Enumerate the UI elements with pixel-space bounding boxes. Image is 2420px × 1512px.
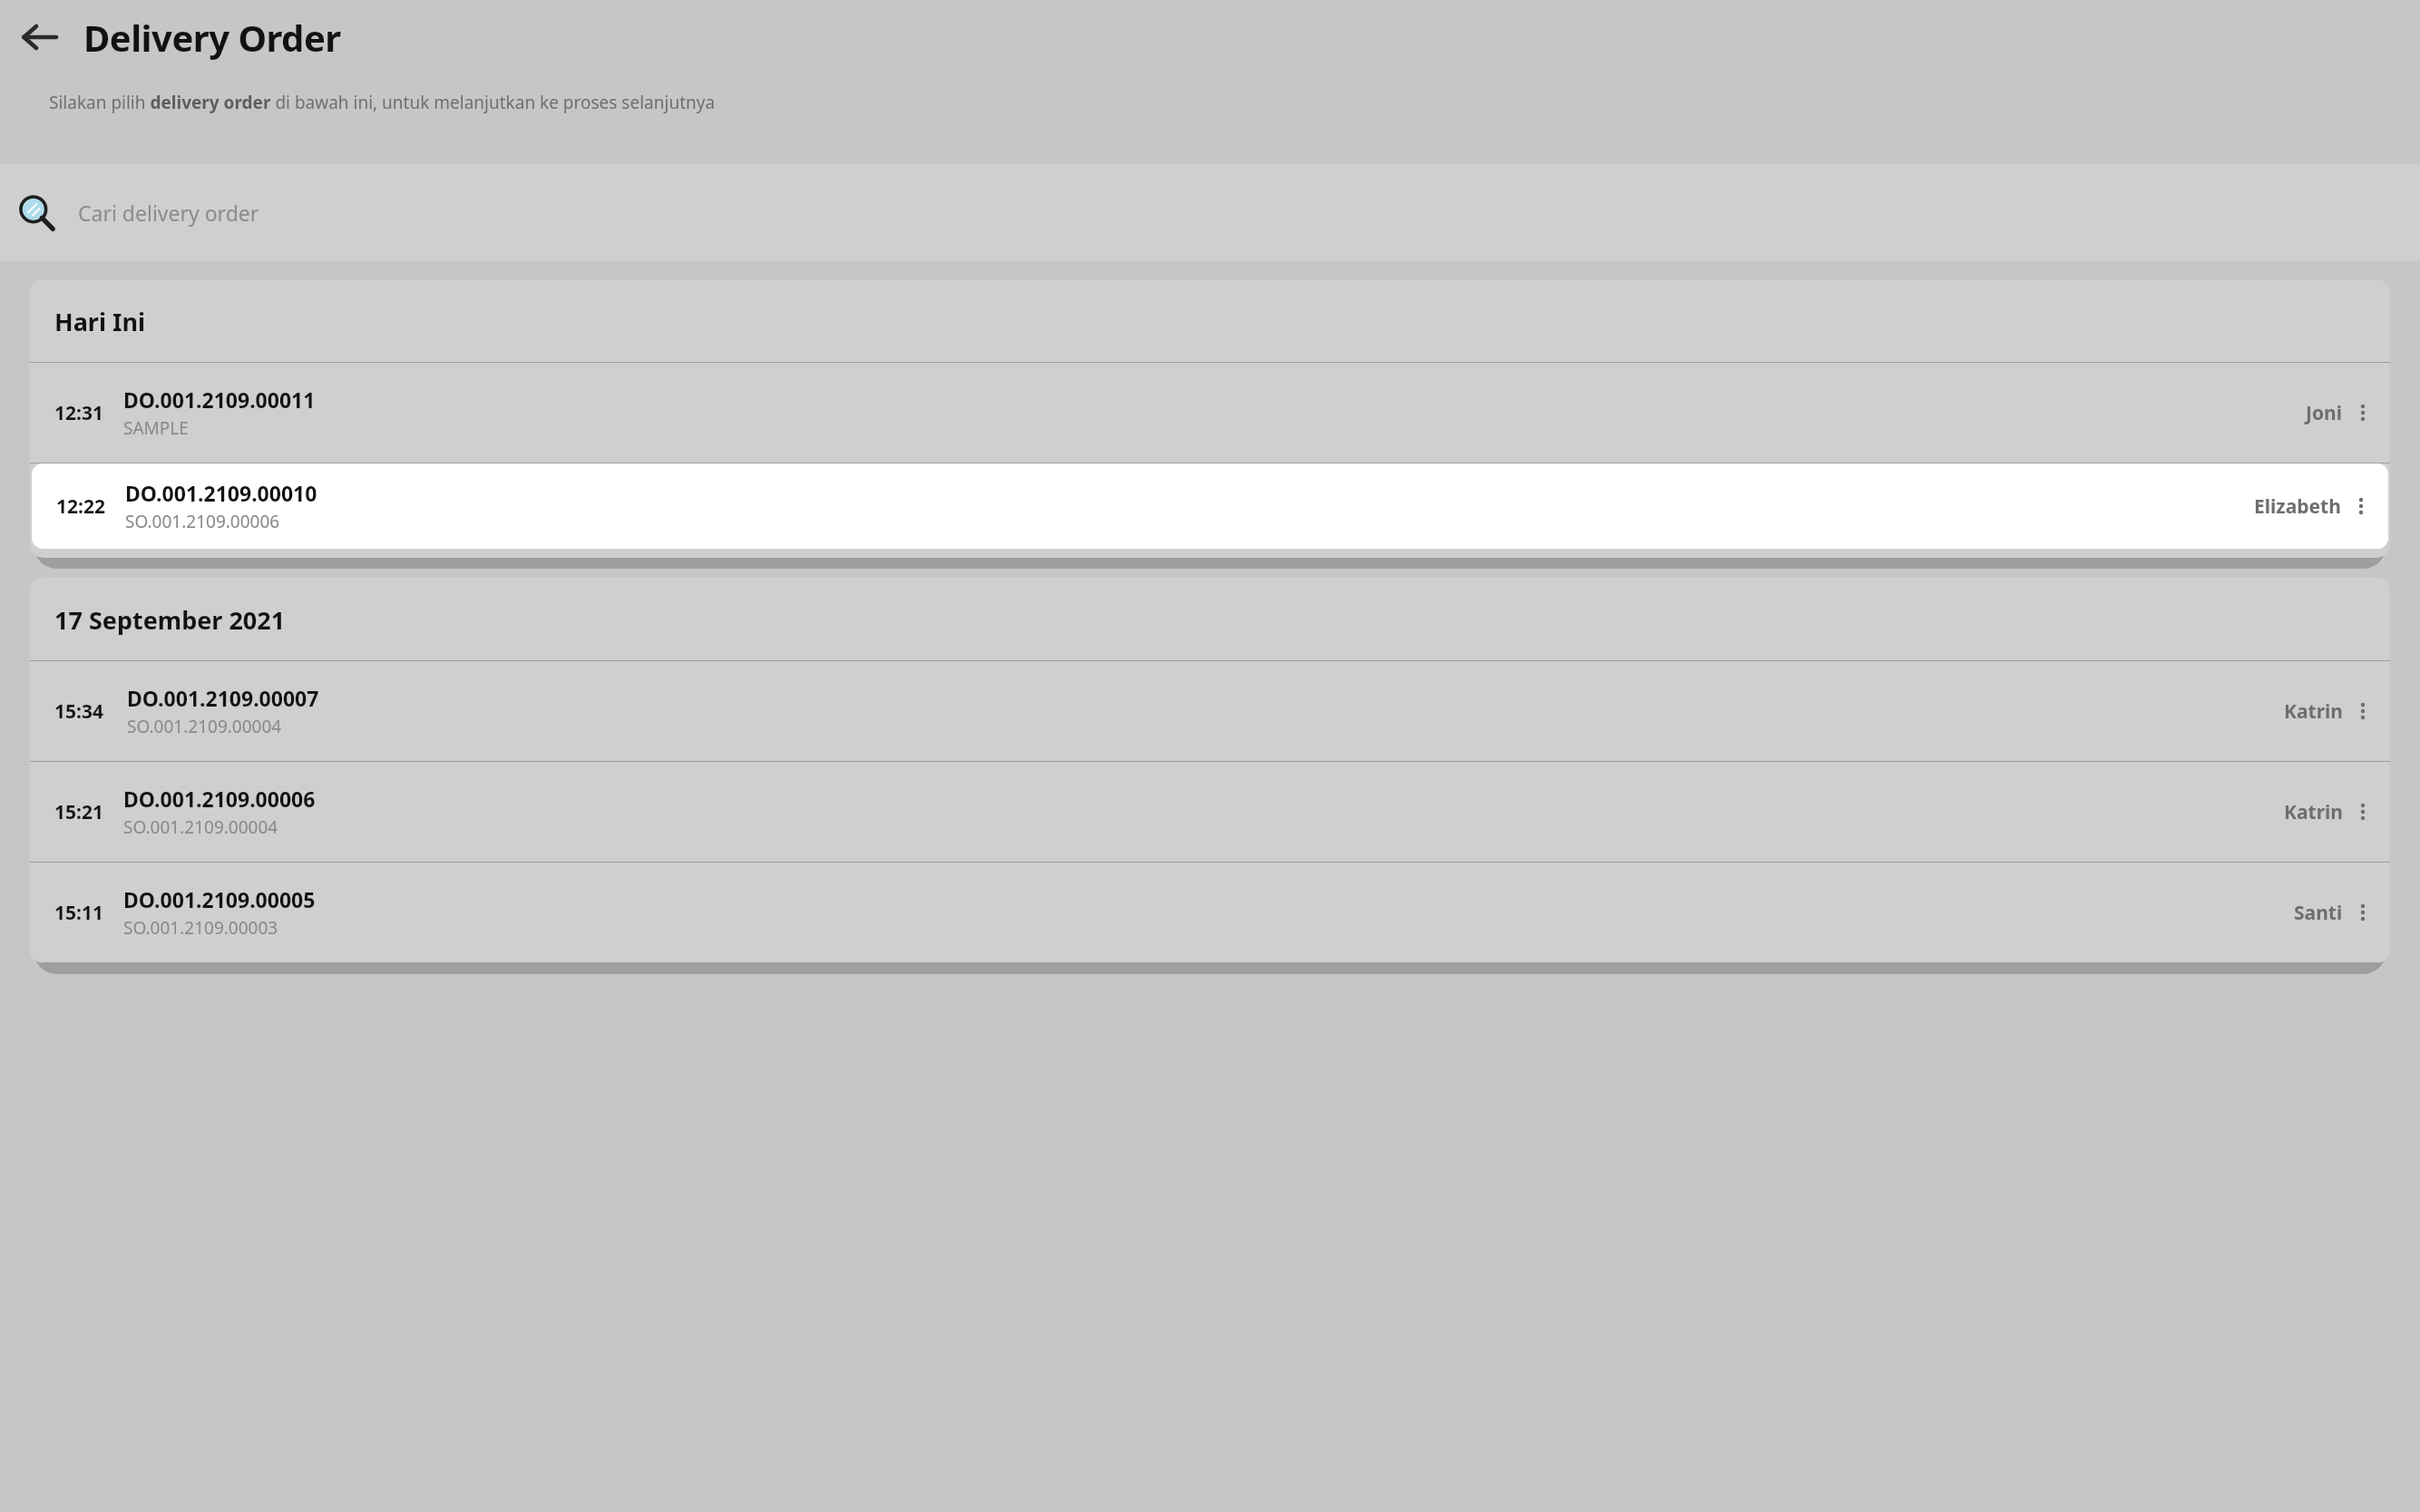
staticText: 15:21 [54, 799, 103, 825]
staticText: Katrin [2284, 698, 2343, 725]
staticText: 15:34 [54, 698, 103, 725]
button[interactable]: 15:34 [30, 661, 2390, 761]
staticText: DO.001.2109.00006 [123, 785, 316, 813]
button[interactable]: 12:22 [32, 463, 2388, 549]
button[interactable]: 15:21 [30, 762, 2390, 862]
staticText: DO.001.2109.00010 [125, 479, 317, 507]
staticText: 15:11 [54, 900, 103, 926]
staticText: SO.001.2109.00006 [125, 510, 280, 533]
staticText: SO.001.2109.00003 [123, 916, 278, 940]
button[interactable]: Back [16, 14, 63, 61]
staticText: SO.001.2109.00004 [127, 715, 282, 738]
button[interactable]: Cari delivery order [0, 164, 2420, 261]
staticText: Santi [2294, 900, 2343, 926]
staticText: Katrin [2284, 799, 2343, 825]
staticText: Cari delivery order [78, 199, 259, 227]
button[interactable]: More options [2341, 479, 2381, 533]
button[interactable]: More options [2343, 385, 2383, 440]
staticText: Joni [2306, 400, 2343, 426]
staticText: SAMPLE [123, 416, 189, 440]
button[interactable]: More options [2343, 684, 2383, 738]
staticText: Elizabeth [2254, 493, 2341, 520]
button[interactable]: More options [2343, 885, 2383, 940]
button[interactable]: 12:31 [30, 363, 2390, 463]
staticText: DO.001.2109.00007 [127, 684, 319, 712]
staticText: 12:31 [54, 400, 103, 426]
staticText: Hari Ini [54, 305, 146, 338]
staticText: Silakan pilih delivery order di bawah in… [49, 91, 716, 114]
staticText: 12:22 [56, 493, 105, 520]
button[interactable]: More options [2343, 785, 2383, 839]
staticText: 17 September 2021 [54, 603, 286, 637]
staticText: DO.001.2109.00011 [123, 385, 316, 414]
staticText: DO.001.2109.00005 [123, 885, 316, 913]
staticText: Delivery Order [83, 13, 341, 62]
staticText: SO.001.2109.00004 [123, 815, 278, 839]
button[interactable]: 15:11 [30, 863, 2390, 962]
